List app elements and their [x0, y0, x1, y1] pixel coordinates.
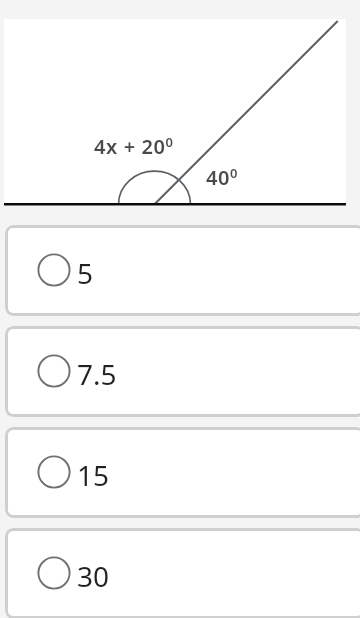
- staticText: 4x + 200: [94, 133, 174, 160]
- staticText: 15: [77, 456, 110, 494]
- staticText: 30: [77, 557, 110, 595]
- button[interactable]: Answer option 15: [5, 427, 360, 518]
- button[interactable]: Answer option 7.5: [5, 326, 360, 417]
- button[interactable]: Answer option 30: [5, 528, 360, 618]
- staticText: 400: [206, 164, 239, 191]
- button[interactable]: Answer option 5: [5, 225, 360, 316]
- staticText: 5: [77, 254, 94, 292]
- staticText: 7.5: [77, 355, 117, 393]
